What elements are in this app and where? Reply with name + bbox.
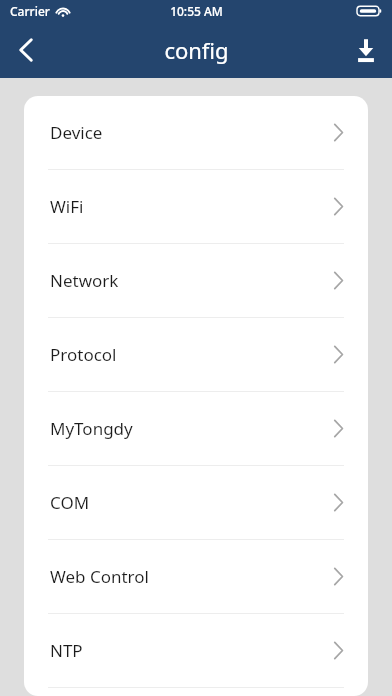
staticText: NTP xyxy=(50,639,83,662)
button[interactable]: Download xyxy=(340,24,392,76)
button[interactable]: Protocol xyxy=(24,318,368,391)
button[interactable]: MyTongdy xyxy=(24,392,368,465)
staticText: Protocol xyxy=(50,343,117,366)
staticText: MyTongdy xyxy=(50,417,133,440)
button[interactable]: Device xyxy=(24,96,368,169)
button[interactable]: NTP xyxy=(24,614,368,687)
staticText: Device xyxy=(50,121,103,144)
staticText: COM xyxy=(50,491,90,514)
button[interactable]: Back xyxy=(0,24,52,76)
staticText: Network xyxy=(50,269,119,292)
button[interactable]: Network xyxy=(24,244,368,317)
button[interactable]: Web Control xyxy=(24,540,368,613)
staticText: config xyxy=(164,35,229,65)
staticText: Web Control xyxy=(50,565,149,588)
button[interactable]: WiFi xyxy=(24,170,368,243)
button[interactable]: COM xyxy=(24,466,368,539)
staticText: Carrier xyxy=(10,3,50,19)
staticText: WiFi xyxy=(50,195,84,218)
staticText: 10:55 AM xyxy=(170,3,223,19)
